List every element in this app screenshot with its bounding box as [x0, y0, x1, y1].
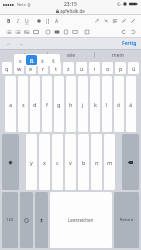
button[interactable]: Quote: [22, 27, 31, 37]
button[interactable]: Leerzeichen: [50, 192, 112, 248]
staticText: w: [17, 65, 22, 72]
button[interactable]: z: [63, 62, 74, 74]
button[interactable]: Indent: [43, 16, 52, 26]
staticText: ich: [20, 52, 27, 59]
button[interactable]: u: [76, 62, 87, 74]
staticText: U: [25, 18, 29, 25]
button[interactable]: f: [42, 76, 52, 132]
button[interactable]: w: [14, 62, 24, 74]
button[interactable]: Bullet list: [4, 27, 13, 37]
button[interactable]: x: [39, 134, 50, 190]
staticText: d: [33, 101, 37, 108]
staticText: A: [55, 18, 59, 25]
button[interactable]: Undo: [119, 27, 128, 37]
button[interactable]: g: [54, 76, 64, 132]
staticText: j: [82, 101, 84, 108]
staticText: |]: [45, 18, 50, 25]
button[interactable]: Next field: [17, 40, 25, 48]
staticText: l: [106, 101, 108, 108]
staticText: m: [107, 159, 113, 166]
staticText: g: [57, 101, 61, 108]
staticText: Netz: [17, 2, 26, 7]
button[interactable]: ś: [37, 55, 48, 65]
button[interactable]: q: [2, 62, 12, 74]
button[interactable]: Emoji: [20, 192, 33, 248]
button[interactable]: Bold: [4, 16, 13, 26]
staticText: k: [94, 101, 97, 108]
button[interactable]: Previous field: [4, 40, 12, 48]
staticText: s: [22, 101, 25, 108]
button[interactable]: o: [102, 62, 113, 74]
button[interactable]: b: [78, 134, 89, 190]
button[interactable]: Fertig: [122, 40, 137, 47]
button[interactable]: mein: [95, 50, 141, 60]
staticText: Fertig: [122, 40, 137, 47]
button[interactable]: Link: [92, 16, 101, 26]
button[interactable]: Return: [114, 192, 139, 248]
button[interactable]: Text color: [34, 16, 43, 26]
staticText: Return: [120, 217, 134, 223]
staticText: wie: [67, 52, 76, 59]
button[interactable]: h: [66, 76, 76, 132]
button[interactable]: š: [48, 55, 59, 65]
button[interactable]: Video: [61, 27, 70, 37]
button[interactable]: Unlink: [101, 16, 110, 26]
staticText: ß: [30, 57, 34, 64]
button[interactable]: Source: [82, 27, 91, 37]
button[interactable]: Highlight: [119, 16, 128, 26]
staticText: š: [52, 57, 55, 64]
button[interactable]: j: [78, 76, 88, 132]
button[interactable]: Redo: [128, 27, 137, 37]
button[interactable]: t: [50, 62, 61, 74]
button[interactable]: n: [91, 134, 102, 190]
button[interactable]: ß: [26, 55, 37, 65]
button[interactable]: r: [38, 62, 48, 74]
staticText: a: [9, 101, 13, 108]
button[interactable]: Font: [52, 16, 61, 26]
button[interactable]: Shift: [2, 134, 19, 190]
button[interactable]: Backspace: [122, 134, 139, 190]
staticText: q: [5, 65, 9, 72]
button[interactable]: ü: [128, 62, 139, 74]
button[interactable]: Code: [31, 27, 40, 37]
staticText: z: [67, 65, 70, 72]
button[interactable]: c: [52, 134, 63, 190]
button[interactable]: s: [15, 55, 26, 65]
button[interactable]: i: [89, 62, 100, 74]
button[interactable]: a: [5, 76, 16, 132]
staticText: ö: [117, 101, 121, 108]
button[interactable]: wie: [48, 50, 94, 60]
button[interactable]: Italic: [13, 16, 22, 26]
button[interactable]: ich: [0, 50, 47, 60]
staticText: o: [106, 65, 110, 72]
button[interactable]: Underline: [22, 16, 31, 26]
staticText: s: [19, 57, 22, 64]
staticText: b: [82, 159, 86, 166]
staticText: p: [119, 65, 123, 72]
button[interactable]: Align: [110, 16, 119, 26]
button[interactable]: Smiley: [43, 27, 52, 37]
button[interactable]: s: [18, 76, 28, 132]
staticText: ü: [132, 65, 136, 72]
staticText: r: [42, 65, 45, 72]
button[interactable]: Brush: [128, 16, 137, 26]
button[interactable]: ö: [114, 76, 124, 132]
button[interactable]: y: [26, 134, 37, 190]
staticText: h: [69, 101, 73, 108]
button[interactable]: k: [90, 76, 100, 132]
button[interactable]: m: [104, 134, 115, 190]
button[interactable]: Numbered list: [13, 27, 22, 37]
button[interactable]: v: [65, 134, 76, 190]
button[interactable]: Image: [52, 27, 61, 37]
button[interactable]: ä: [126, 76, 136, 132]
staticText: n: [95, 159, 99, 166]
button[interactable]: Dictate: [35, 192, 48, 248]
button[interactable]: Table: [70, 27, 79, 37]
button[interactable]: l: [102, 76, 112, 132]
button[interactable]: p: [115, 62, 126, 74]
button[interactable]: e: [26, 62, 36, 74]
button[interactable]: d: [30, 76, 40, 132]
staticText: ś: [41, 57, 44, 64]
staticText: t: [55, 65, 57, 72]
button[interactable]: 123: [2, 192, 18, 248]
